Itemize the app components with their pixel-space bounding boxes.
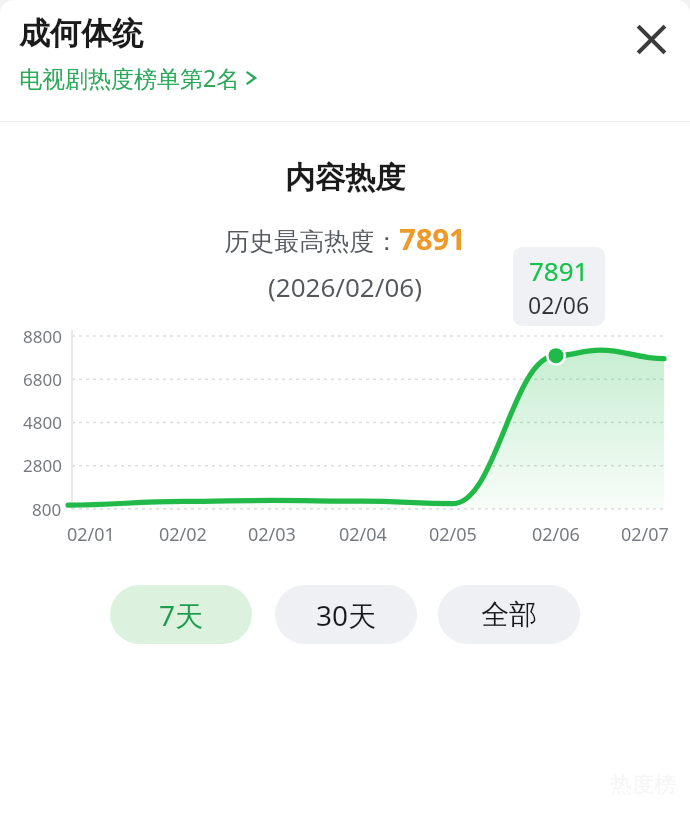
staticText: 7天 xyxy=(159,596,204,634)
staticText: 热度榜 xyxy=(610,771,676,799)
button[interactable]: 30天 xyxy=(275,585,417,644)
staticText: 全部 xyxy=(481,597,537,632)
button[interactable]: 7天 xyxy=(110,585,252,644)
staticText: 历史最高热度：7891 xyxy=(0,219,690,258)
button[interactable]: 全部 xyxy=(438,585,580,644)
staticText: 30天 xyxy=(316,596,377,634)
staticText: (2026/02/06) xyxy=(0,269,690,304)
button[interactable]: Close xyxy=(625,13,677,65)
staticText: 成何体统 xyxy=(19,14,143,53)
button[interactable]: 电视剧热度榜单第2名 xyxy=(19,62,258,93)
staticText: 内容热度 xyxy=(0,159,690,197)
staticText: 电视剧热度榜单第2名 xyxy=(19,62,240,93)
